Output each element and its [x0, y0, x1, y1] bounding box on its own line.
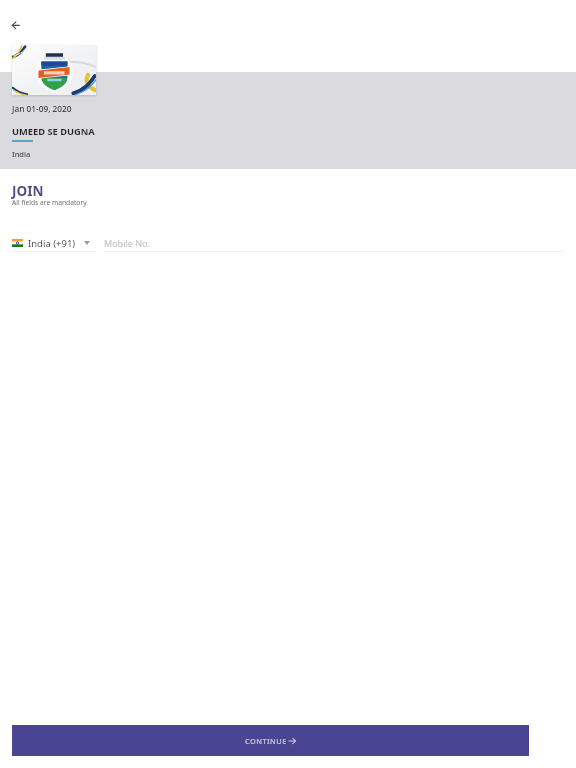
- button[interactable]: CONTINUE: [12, 725, 529, 756]
- staticText: All fields are mandatory: [12, 198, 87, 207]
- staticText: India (+91): [28, 237, 76, 250]
- staticText: Mobile No.: [104, 237, 150, 249]
- staticText: JOIN: [12, 182, 44, 200]
- button[interactable]: Mobile No.: [104, 234, 564, 252]
- staticText: CONTINUE: [245, 736, 287, 746]
- staticText: India: [12, 149, 31, 159]
- staticText: Jan 01-09, 2020: [12, 103, 72, 114]
- button[interactable]: India (+91): [12, 234, 95, 252]
- staticText: UMEED SE DUGNA: [12, 125, 95, 138]
- button[interactable]: Back: [3, 13, 28, 38]
